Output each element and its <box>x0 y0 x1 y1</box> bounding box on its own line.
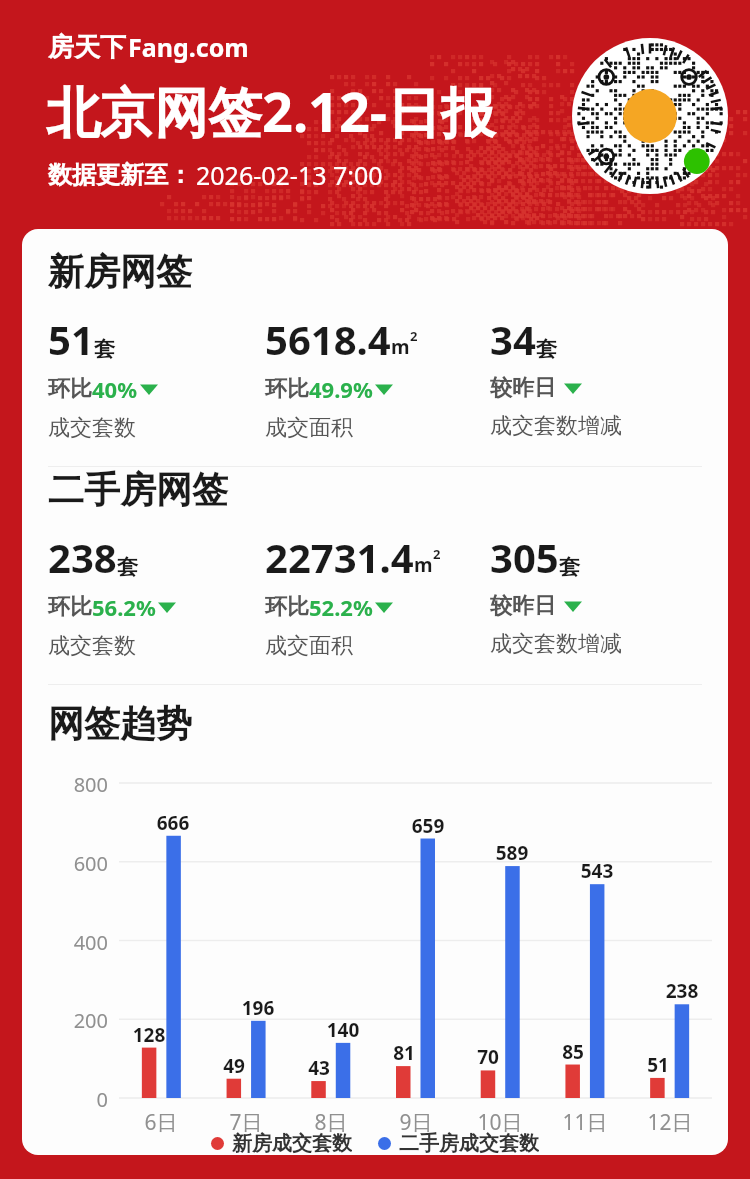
staticText: 2 <box>433 545 441 563</box>
staticText: 房天下 <box>48 31 126 64</box>
staticText: 238 <box>48 530 117 584</box>
staticText: 659 <box>398 813 458 839</box>
staticText: 7日 <box>216 1108 276 1137</box>
staticText: 环比 <box>265 375 309 403</box>
staticText: Fang.com <box>128 30 249 64</box>
staticText: 800 <box>52 771 108 798</box>
staticText: 8日 <box>301 1108 361 1137</box>
staticText: 305 <box>490 530 559 584</box>
staticText: 6日 <box>131 1108 191 1137</box>
button[interactable]: 51 <box>48 312 265 442</box>
staticText: 成交套数 <box>48 632 136 660</box>
staticText: 5618.4 <box>265 312 391 366</box>
button[interactable]: 二手房成交套数 <box>378 1131 539 1155</box>
button[interactable]: 5618.4 <box>265 312 490 442</box>
staticText: 数据更新至： <box>48 160 192 190</box>
staticText: 新房网签 <box>48 249 192 294</box>
button[interactable]: 22731.4 <box>265 530 490 660</box>
staticText: 环比 <box>48 593 92 621</box>
staticText: 11日 <box>555 1108 615 1137</box>
staticText: 51 <box>628 1052 688 1078</box>
staticText: 北京网签2.12-日报 <box>46 74 496 148</box>
staticText: 49 <box>204 1053 264 1079</box>
staticText: 套 <box>536 336 557 362</box>
staticText: 543 <box>567 858 627 884</box>
staticText: 70 <box>458 1044 518 1070</box>
button[interactable]: 305 <box>490 530 702 658</box>
staticText: 34 <box>490 312 536 366</box>
staticText: 43 <box>289 1055 349 1081</box>
staticText: 10日 <box>470 1108 530 1137</box>
staticText: 22731.4 <box>265 530 414 584</box>
staticText: 环比 <box>265 593 309 621</box>
staticText: 2 <box>410 327 418 345</box>
staticText: 成交面积 <box>265 632 353 660</box>
staticText: 238 <box>652 978 712 1004</box>
staticText: 600 <box>52 850 108 877</box>
button[interactable]: 34 <box>490 312 702 440</box>
staticText: 成交套数增减 <box>490 412 622 440</box>
staticText: 二手房网签 <box>48 467 228 512</box>
staticText: 套 <box>117 554 138 580</box>
staticText: 140 <box>313 1017 373 1043</box>
staticText: 二手房成交套数 <box>399 1131 539 1155</box>
staticText: 较昨日 <box>490 592 556 620</box>
staticText: 较昨日 <box>490 374 556 402</box>
staticText: 套 <box>559 554 580 580</box>
staticText: 400 <box>52 929 108 956</box>
staticText: 2026-02-13 7:00 <box>196 158 383 192</box>
staticText: 85 <box>543 1039 603 1065</box>
staticText: 12日 <box>640 1108 700 1137</box>
staticText: 套 <box>94 336 115 362</box>
staticText: 56.2% <box>92 592 156 622</box>
staticText: 新房成交套数 <box>232 1131 352 1155</box>
staticText: 成交套数增减 <box>490 630 622 658</box>
staticText: 666 <box>143 810 203 836</box>
staticText: 49.9% <box>309 374 373 404</box>
staticText: 0 <box>52 1086 108 1113</box>
staticText: 51 <box>48 312 94 366</box>
staticText: m <box>391 334 410 360</box>
button[interactable]: 新房成交套数 <box>211 1131 352 1155</box>
staticText: 40% <box>92 374 138 404</box>
staticText: 81 <box>374 1040 434 1066</box>
staticText: 52.2% <box>309 592 373 622</box>
staticText: 196 <box>228 995 288 1021</box>
button[interactable]: 小程序二维码 <box>572 38 728 194</box>
button[interactable]: 238 <box>48 530 265 660</box>
staticText: 589 <box>482 840 542 866</box>
staticText: 128 <box>119 1022 179 1048</box>
staticText: 成交套数 <box>48 414 136 442</box>
staticText: 成交面积 <box>265 414 353 442</box>
staticText: 200 <box>52 1007 108 1034</box>
staticText: m <box>414 552 433 578</box>
staticText: 环比 <box>48 375 92 403</box>
staticText: 9日 <box>386 1108 446 1137</box>
staticText: 网签趋势 <box>48 701 192 746</box>
